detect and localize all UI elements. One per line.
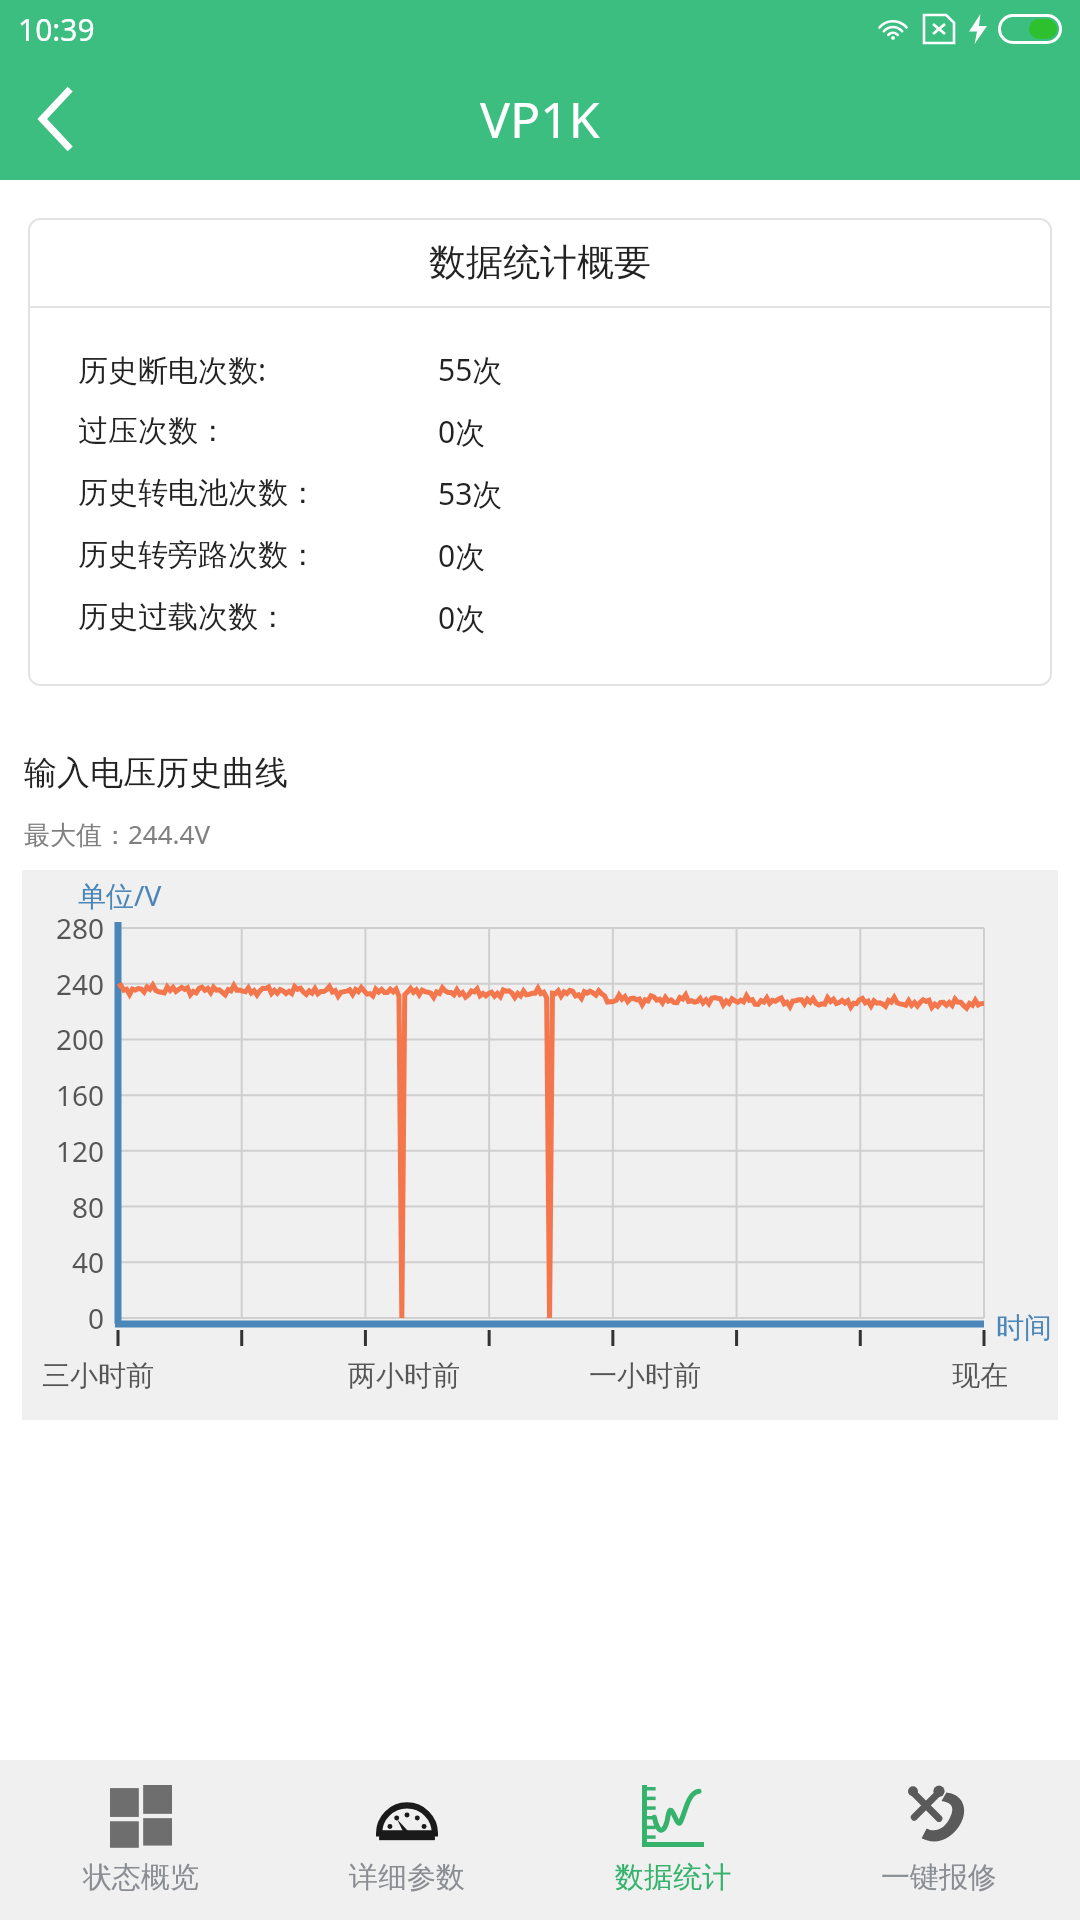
- staticText: 单位/V: [78, 876, 162, 914]
- staticText: 过压次数：: [78, 412, 228, 450]
- staticText: 三小时前: [42, 1358, 154, 1393]
- staticText: 详细参数: [349, 1859, 465, 1896]
- button[interactable]: Back: [0, 58, 110, 180]
- staticText: 10:39: [18, 9, 95, 50]
- button[interactable]: 状态概览: [16, 1760, 266, 1920]
- staticText: 280: [55, 909, 104, 947]
- staticText: 160: [55, 1076, 104, 1114]
- staticText: 历史断电次数:: [78, 349, 267, 390]
- button[interactable]: 详细参数: [282, 1760, 532, 1920]
- button[interactable]: 数据统计: [548, 1760, 798, 1920]
- staticText: 时间: [996, 1310, 1052, 1345]
- staticText: 0次: [438, 411, 486, 452]
- staticText: 历史转旁路次数：: [78, 536, 318, 574]
- staticText: 历史过载次数：: [78, 598, 288, 636]
- staticText: 120: [55, 1132, 104, 1170]
- staticText: 两小时前: [348, 1358, 460, 1393]
- staticText: 一键报修: [881, 1859, 997, 1896]
- staticText: 状态概览: [83, 1859, 199, 1896]
- staticText: 40: [71, 1243, 104, 1281]
- staticText: 53次: [438, 473, 503, 514]
- staticText: 一小时前: [589, 1358, 701, 1393]
- staticText: 0次: [438, 535, 486, 576]
- staticText: 数据统计: [615, 1859, 731, 1896]
- staticText: 输入电压历史曲线: [24, 752, 288, 794]
- staticText: 80: [71, 1188, 104, 1226]
- staticText: 最大值：244.4V: [24, 816, 211, 852]
- staticText: 历史转电池次数：: [78, 474, 318, 512]
- staticText: 55次: [438, 349, 503, 390]
- staticText: 0次: [438, 597, 486, 638]
- staticText: 0: [87, 1299, 104, 1337]
- staticText: 现在: [952, 1358, 1008, 1393]
- staticText: 240: [55, 965, 104, 1003]
- staticText: 200: [55, 1020, 104, 1058]
- button[interactable]: 一键报修: [814, 1760, 1064, 1920]
- staticText: 数据统计概要: [429, 239, 651, 286]
- button[interactable]: 数据统计概要: [28, 218, 1052, 686]
- staticText: VP1K: [480, 85, 600, 153]
